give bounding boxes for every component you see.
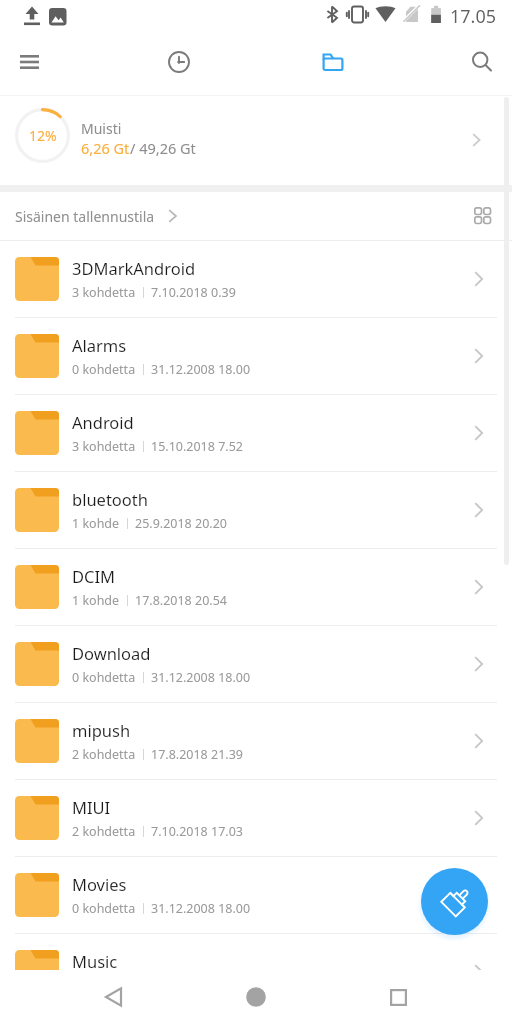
staticText: 6,26 Gt xyxy=(81,138,130,158)
staticText: 3DMarkAndroid xyxy=(72,257,196,279)
staticText: 3 kohdetta xyxy=(72,284,136,301)
button[interactable]: Download xyxy=(0,626,512,702)
staticText: Download xyxy=(72,642,151,664)
staticText: 31.12.2008 18.00 xyxy=(151,900,251,917)
button[interactable]: Back xyxy=(74,970,154,1024)
button[interactable]: Home xyxy=(216,970,296,1024)
staticText: 0 kohdetta xyxy=(72,669,136,686)
staticText: 0 kohdetta xyxy=(72,361,136,378)
button[interactable]: Android xyxy=(0,395,512,471)
staticText: 31.12.2008 18.00 xyxy=(151,361,251,378)
staticText: 31.12.2008 18.00 xyxy=(151,977,251,994)
staticText: Muisti xyxy=(81,119,122,138)
staticText: Sisäinen tallennustila xyxy=(15,207,155,226)
staticText: Music xyxy=(72,950,118,972)
button[interactable]: Music xyxy=(0,934,512,1010)
staticText: Android xyxy=(72,411,134,433)
button[interactable]: DCIM xyxy=(0,549,512,625)
button[interactable]: Clean up storage xyxy=(421,868,488,935)
button[interactable]: Menu xyxy=(1,36,57,88)
staticText: 7.10.2018 17.03 xyxy=(151,823,243,840)
staticText: 0 kohdetta xyxy=(72,977,136,994)
staticText: Movies xyxy=(72,873,127,895)
staticText: 0 kohdetta xyxy=(72,900,136,917)
button[interactable]: Recent files xyxy=(151,36,207,88)
staticText: 17.8.2018 21.39 xyxy=(151,746,243,763)
staticText: 7.10.2018 0.39 xyxy=(151,284,236,301)
staticText: / 49,26 Gt xyxy=(130,138,196,158)
staticText: DCIM xyxy=(72,565,116,587)
button[interactable]: bluetooth xyxy=(0,472,512,548)
button[interactable]: Search xyxy=(454,36,510,88)
button[interactable]: Movies xyxy=(0,857,512,933)
button[interactable]: Sisäinen tallennustila xyxy=(15,207,180,226)
staticText: 2 kohdetta xyxy=(72,823,136,840)
button[interactable]: Recent apps xyxy=(358,970,438,1024)
staticText: MIUI xyxy=(72,796,111,818)
button[interactable]: mipush xyxy=(0,703,512,779)
staticText: 15.10.2018 7.52 xyxy=(151,438,243,455)
staticText: bluetooth xyxy=(72,488,148,510)
staticText: 17.8.2018 20.54 xyxy=(135,592,227,609)
button[interactable]: 12% xyxy=(0,96,512,185)
staticText: 1 kohde xyxy=(72,515,120,532)
staticText: mipush xyxy=(72,719,131,741)
button[interactable]: Files xyxy=(305,36,361,88)
staticText: 12% xyxy=(29,126,57,145)
staticText: 1 kohde xyxy=(72,592,120,609)
button[interactable]: MIUI xyxy=(0,780,512,856)
staticText: 2 kohdetta xyxy=(72,746,136,763)
button[interactable]: Alarms xyxy=(0,318,512,394)
staticText: Alarms xyxy=(72,334,127,356)
staticText: 17.05 xyxy=(450,4,497,29)
staticText: 25.9.2018 20.20 xyxy=(135,515,227,532)
staticText: 31.12.2008 18.00 xyxy=(151,669,251,686)
button[interactable]: 3DMarkAndroid xyxy=(0,241,512,317)
staticText: 3 kohdetta xyxy=(72,438,136,455)
button[interactable]: Grid view xyxy=(458,192,506,240)
